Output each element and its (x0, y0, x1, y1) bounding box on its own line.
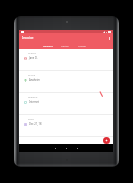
staticText: Internet (29, 100, 39, 104)
button[interactable]: Back (52, 145, 58, 151)
staticText: CLIENT (28, 51, 37, 54)
staticText: Anaheim (29, 78, 40, 82)
staticText: ITEMS (61, 44, 69, 47)
button[interactable]: SERVICE (19, 93, 113, 115)
staticText: Invoice (22, 35, 34, 40)
button[interactable]: CLIENT (19, 49, 113, 71)
staticText: NOTES (78, 44, 86, 47)
staticText: SERVICE (28, 95, 38, 98)
button[interactable]: Recents (74, 145, 80, 151)
staticText: PLACE (28, 73, 36, 76)
button[interactable]: ITEMS (56, 42, 73, 49)
staticText: DATE (28, 117, 34, 120)
button[interactable]: PLACE (19, 71, 113, 93)
button[interactable]: More options (106, 35, 112, 41)
staticText: Jane D. (29, 56, 38, 60)
button[interactable]: DETAILS (39, 42, 56, 49)
button[interactable]: Add (103, 137, 110, 144)
staticText: Dec 21, 18 (29, 122, 42, 126)
button[interactable]: NOTES (73, 42, 90, 49)
button[interactable]: Home (63, 145, 69, 151)
staticText: DETAILS (43, 44, 53, 47)
button[interactable]: DATE (19, 115, 113, 137)
